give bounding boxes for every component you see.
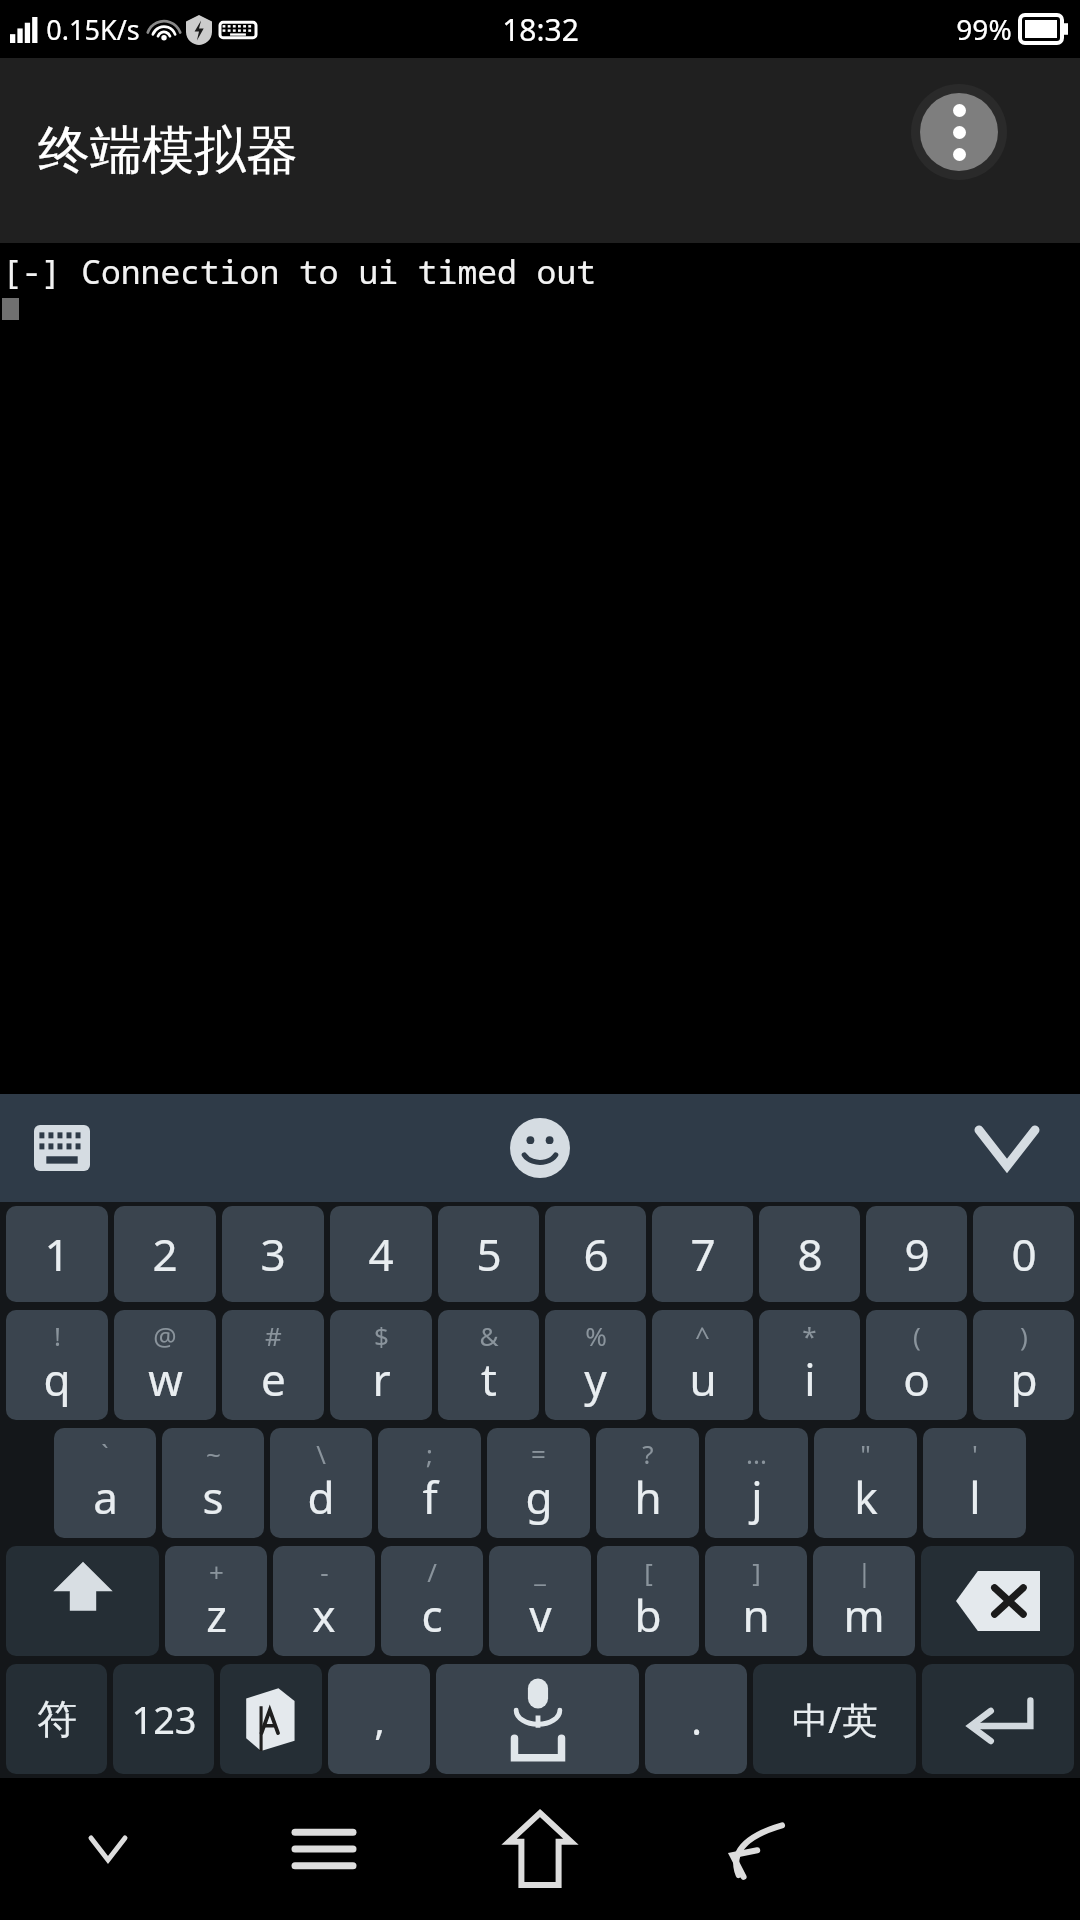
button[interactable]: 9 xyxy=(866,1206,967,1302)
staticText: ^ xyxy=(695,1318,710,1353)
staticText: t xyxy=(481,1349,497,1409)
button[interactable]: Hide xyxy=(0,1778,216,1920)
button[interactable]: ^ xyxy=(652,1310,753,1420)
button[interactable]: ` xyxy=(54,1428,156,1538)
staticText: * xyxy=(802,1318,817,1353)
button[interactable]: ] xyxy=(705,1546,807,1656)
staticText: 中/英 xyxy=(792,1695,878,1744)
button[interactable]: 中/英 xyxy=(753,1664,916,1774)
button[interactable]: ! xyxy=(6,1310,108,1420)
staticText: 18:32 xyxy=(502,9,579,50)
button[interactable]: Enter xyxy=(922,1664,1074,1774)
staticText: c xyxy=(421,1585,443,1645)
button[interactable]: Switch language xyxy=(220,1664,322,1774)
button[interactable]: Home xyxy=(432,1778,648,1920)
staticText: 8 xyxy=(797,1224,823,1284)
staticText: ~ xyxy=(206,1436,221,1471)
button[interactable]: = xyxy=(487,1428,590,1538)
staticText: u xyxy=(689,1349,717,1409)
staticText: - xyxy=(320,1554,329,1589)
button[interactable]: % xyxy=(545,1310,646,1420)
button[interactable]: $ xyxy=(330,1310,432,1420)
staticText: [ xyxy=(644,1554,653,1589)
button[interactable]: 5 xyxy=(438,1206,539,1302)
button[interactable]: Shift xyxy=(6,1546,159,1656)
button[interactable]: ... xyxy=(705,1428,808,1538)
button[interactable]: Back xyxy=(648,1778,864,1920)
staticText: 7 xyxy=(690,1224,716,1284)
staticText: $ xyxy=(374,1318,389,1353)
button[interactable]: Hide keyboard xyxy=(966,1107,1048,1189)
staticText: & xyxy=(479,1318,499,1353)
staticText: = xyxy=(531,1436,546,1471)
button[interactable]: _ xyxy=(489,1546,591,1656)
staticText: + xyxy=(209,1554,224,1589)
button[interactable]: * xyxy=(759,1310,860,1420)
button[interactable]: 4 xyxy=(330,1206,432,1302)
button[interactable]: ) xyxy=(973,1310,1074,1420)
button[interactable]: [-] Connection to ui timed out xyxy=(0,243,1080,1094)
button[interactable]: @ xyxy=(114,1310,216,1420)
button[interactable]: ' xyxy=(923,1428,1026,1538)
staticText: ` xyxy=(101,1436,109,1471)
button[interactable]: Recents xyxy=(216,1778,432,1920)
button[interactable]: ~ xyxy=(162,1428,264,1538)
staticText: . xyxy=(691,1692,702,1746)
button[interactable]: 符 xyxy=(6,1664,107,1774)
staticText: y xyxy=(584,1349,607,1409)
staticText: _ xyxy=(534,1554,546,1589)
button[interactable]: \ xyxy=(270,1428,372,1538)
button[interactable]: ? xyxy=(596,1428,699,1538)
button[interactable]: [ xyxy=(597,1546,699,1656)
staticText: ' xyxy=(972,1436,978,1471)
button[interactable]: / xyxy=(381,1546,483,1656)
button[interactable]: & xyxy=(438,1310,539,1420)
staticText: 6 xyxy=(583,1224,609,1284)
staticText: 终端模拟器 xyxy=(38,118,298,184)
button[interactable]: . xyxy=(645,1664,747,1774)
button[interactable]: - xyxy=(273,1546,375,1656)
button[interactable]: 123 xyxy=(113,1664,214,1774)
staticText: 符 xyxy=(37,1694,77,1744)
button[interactable]: ; xyxy=(378,1428,481,1538)
staticText: q xyxy=(43,1349,71,1409)
staticText: o xyxy=(903,1349,930,1409)
staticText: f xyxy=(422,1467,438,1527)
button[interactable]: 8 xyxy=(759,1206,860,1302)
button[interactable]: More options xyxy=(911,84,1007,180)
staticText: 3 xyxy=(260,1224,286,1284)
staticText: a xyxy=(93,1467,118,1527)
staticText: m xyxy=(843,1585,885,1645)
staticText: ) xyxy=(1020,1318,1028,1353)
staticText: 0 xyxy=(1011,1224,1037,1284)
button[interactable]: Space xyxy=(436,1664,639,1774)
button[interactable]: , xyxy=(328,1664,430,1774)
staticText: w xyxy=(148,1349,183,1409)
staticText: e xyxy=(261,1349,286,1409)
staticText: ( xyxy=(913,1318,921,1353)
staticText: ; xyxy=(426,1436,433,1471)
staticText: p xyxy=(1010,1349,1038,1409)
staticText: d xyxy=(307,1467,335,1527)
button[interactable]: 1 xyxy=(6,1206,108,1302)
staticText: s xyxy=(202,1467,224,1527)
staticText: 123 xyxy=(131,1693,197,1745)
button[interactable]: # xyxy=(222,1310,324,1420)
staticText: ! xyxy=(54,1318,61,1353)
button[interactable]: ( xyxy=(866,1310,967,1420)
staticText: h xyxy=(634,1467,662,1527)
button[interactable]: 6 xyxy=(545,1206,646,1302)
button[interactable]: 3 xyxy=(222,1206,324,1302)
button[interactable]: 2 xyxy=(114,1206,216,1302)
staticText: | xyxy=(857,1554,872,1589)
button[interactable]: + xyxy=(165,1546,267,1656)
staticText: r xyxy=(372,1349,391,1409)
button[interactable]: | xyxy=(813,1546,915,1656)
button[interactable]: Backspace xyxy=(921,1546,1074,1656)
button[interactable]: Emoji xyxy=(497,1105,583,1191)
button[interactable]: " xyxy=(814,1428,917,1538)
staticText: i xyxy=(804,1349,816,1409)
button[interactable]: 0 xyxy=(973,1206,1074,1302)
button[interactable]: 7 xyxy=(652,1206,753,1302)
button[interactable]: Keyboard settings xyxy=(22,1108,102,1188)
